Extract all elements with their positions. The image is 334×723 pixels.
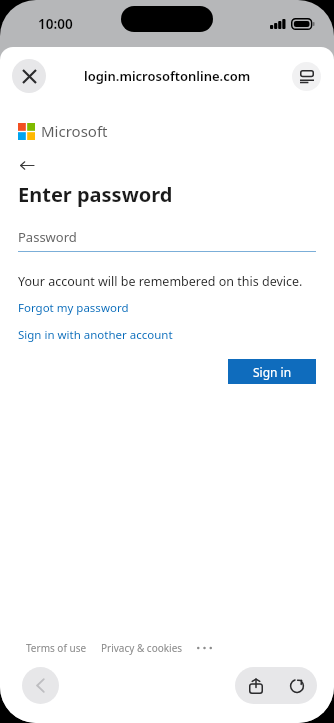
button[interactable]: Reload bbox=[276, 667, 317, 704]
button[interactable]: Back bbox=[22, 667, 59, 704]
staticText: Terms of use bbox=[26, 641, 87, 655]
staticText: Forgot my password bbox=[18, 300, 129, 316]
button[interactable]: Close bbox=[12, 59, 46, 93]
staticText: Sign in bbox=[253, 364, 292, 380]
button[interactable]: Sign in with another account bbox=[18, 327, 173, 343]
staticText: Sign in with another account bbox=[18, 327, 173, 343]
button[interactable]: Terms of use bbox=[26, 641, 87, 655]
button[interactable]: More bbox=[195, 641, 213, 655]
button[interactable]: Forgot my password bbox=[18, 300, 129, 316]
staticText: Microsoft bbox=[41, 121, 108, 141]
staticText: Privacy & cookies bbox=[101, 641, 183, 655]
staticText: login.microsoftonline.com bbox=[84, 67, 251, 85]
button[interactable]: Sign in bbox=[228, 359, 316, 384]
button[interactable]: Share bbox=[235, 667, 276, 704]
staticText: Your account will be remembered on this … bbox=[18, 273, 303, 290]
button[interactable]: Password bbox=[18, 226, 316, 247]
staticText: Password bbox=[18, 228, 77, 246]
staticText: Enter password bbox=[18, 181, 173, 208]
staticText: 10:00 bbox=[38, 15, 73, 33]
button[interactable]: Back bbox=[13, 151, 41, 179]
button[interactable]: Reader view bbox=[292, 62, 321, 91]
button[interactable]: Privacy & cookies bbox=[101, 641, 183, 655]
